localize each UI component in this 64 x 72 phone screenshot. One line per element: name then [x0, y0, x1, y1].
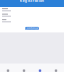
button[interactable]: Search	[16, 63, 32, 72]
button[interactable]: Profile	[32, 63, 48, 72]
button[interactable]: Home	[0, 63, 16, 72]
staticText: Continue	[25, 27, 39, 30]
button[interactable]: Continue	[25, 27, 39, 30]
staticText: Registration	[19, 0, 44, 3]
button[interactable]: Settings	[48, 63, 64, 72]
